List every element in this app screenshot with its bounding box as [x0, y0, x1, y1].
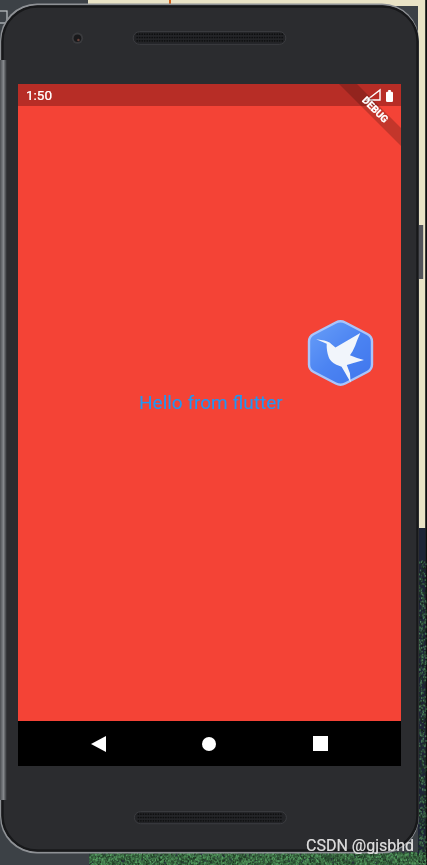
staticText: Hello from flutter	[139, 391, 283, 413]
button[interactable]: Back	[54, 721, 142, 766]
button[interactable]: Recent apps	[276, 721, 364, 766]
staticText: DEBUG	[359, 94, 390, 125]
staticText: CSDN @gjsbhd	[306, 836, 415, 855]
button[interactable]: Home	[165, 721, 253, 766]
staticText: 1:50	[26, 87, 53, 103]
